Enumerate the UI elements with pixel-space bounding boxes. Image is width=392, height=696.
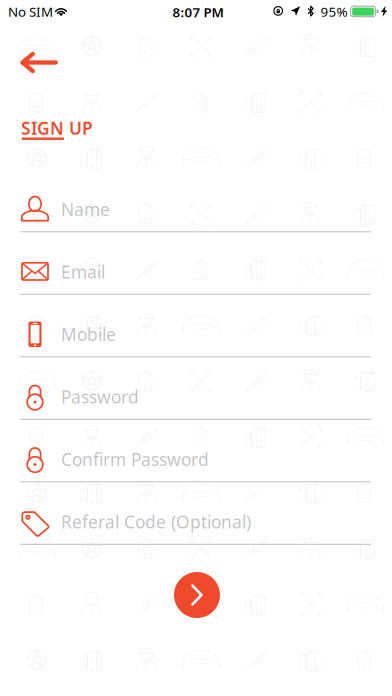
button[interactable]: Password xyxy=(20,357,371,420)
staticText: Mobile xyxy=(61,323,116,346)
button[interactable]: Back xyxy=(20,52,58,73)
staticText: Referal Code (Optional) xyxy=(61,510,251,533)
button[interactable]: Email xyxy=(20,232,371,295)
staticText: Name xyxy=(61,198,110,221)
staticText: 95% xyxy=(320,3,347,20)
button[interactable]: Referal Code (Optional) xyxy=(20,482,371,545)
button[interactable]: Mobile xyxy=(20,295,371,357)
button[interactable]: Next xyxy=(174,572,220,618)
staticText: Confirm Password xyxy=(61,448,209,471)
staticText: SIGN UP xyxy=(21,116,93,139)
button[interactable]: Confirm Password xyxy=(20,420,371,482)
button[interactable]: Name xyxy=(20,170,371,232)
staticText: Email xyxy=(61,260,105,283)
staticText: No SIM xyxy=(8,3,53,20)
staticText: 8:07 PM xyxy=(172,3,223,21)
staticText: Password xyxy=(61,385,139,408)
